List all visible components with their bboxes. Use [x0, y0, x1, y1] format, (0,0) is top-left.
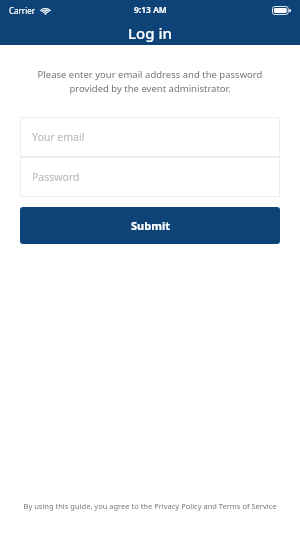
staticText: Carrier: [9, 5, 36, 16]
button[interactable]: Your email: [20, 117, 280, 157]
staticText: Log in: [128, 23, 172, 43]
staticText: Your email: [32, 130, 85, 144]
button[interactable]: Password: [20, 157, 280, 197]
staticText: By using this guide, you agree to the Pr…: [10, 501, 290, 511]
staticText: Please enter your email address and the …: [26, 68, 274, 95]
button[interactable]: Submit: [20, 207, 280, 244]
other: Wi-Fi signal: [40, 6, 51, 15]
staticText: Password: [32, 170, 80, 184]
other: Battery full: [272, 6, 291, 15]
staticText: 9:13 AM: [134, 4, 167, 16]
staticText: Submit: [131, 218, 170, 233]
button[interactable]: By using this guide, you agree to the Pr…: [10, 501, 290, 511]
